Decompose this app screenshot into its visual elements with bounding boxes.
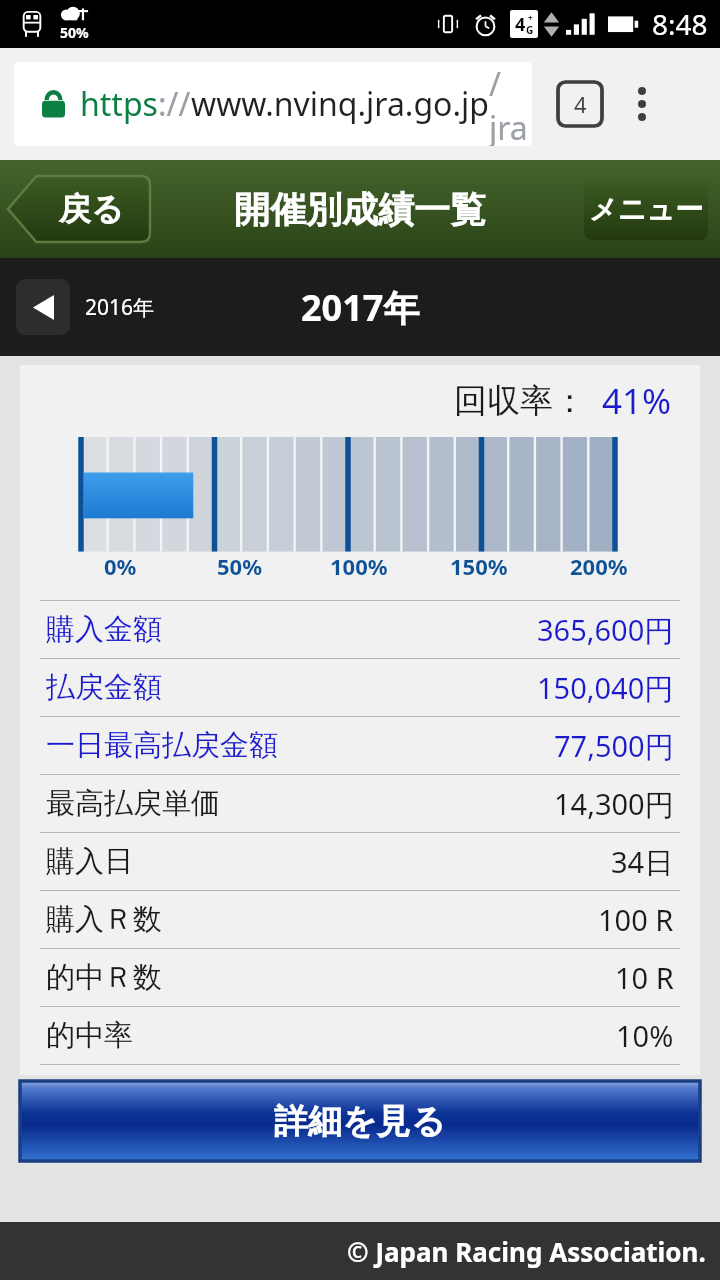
staticText: 150,040円 <box>537 668 674 708</box>
button[interactable]: Tabs <box>558 82 602 126</box>
staticText: メニュー <box>589 192 703 227</box>
button[interactable]: More options <box>622 79 662 129</box>
button[interactable]: 戻る <box>8 176 150 242</box>
staticText: :// <box>158 82 191 126</box>
staticText: 開催別成績一覧 <box>234 187 486 232</box>
button[interactable]: 購入日 <box>20 833 700 890</box>
button[interactable]: 的中Ｒ数 <box>20 949 700 1006</box>
staticText: 2017年 <box>301 283 420 332</box>
staticText: 購入Ｒ数 <box>46 901 162 938</box>
staticText: 8:48 <box>652 5 708 43</box>
staticText: 詳細を見る <box>274 1100 446 1143</box>
button[interactable]: メニュー <box>584 178 708 240</box>
staticText: 50% <box>217 551 263 581</box>
staticText: © Japan Racing Association. <box>347 1234 706 1269</box>
staticText: https <box>80 82 158 126</box>
staticText: 購入日 <box>46 843 133 880</box>
staticText: 10 R <box>615 958 674 997</box>
button[interactable]: 購入Ｒ数 <box>20 891 700 948</box>
staticText: 一日最高払戻金額 <box>46 727 278 764</box>
staticText: 4 <box>574 89 587 119</box>
staticText: 50% <box>60 23 89 42</box>
staticText: 戻る <box>59 189 124 229</box>
staticText: 10% <box>616 1016 674 1055</box>
staticText: 365,600円 <box>537 610 674 650</box>
staticText: 払戻金額 <box>46 669 162 706</box>
staticText: 4 <box>515 12 526 37</box>
staticText: 0% <box>104 551 137 581</box>
button[interactable]: 一日最高払戻金額 <box>20 717 700 774</box>
staticText: www.nvinq.jra.go.jp <box>191 82 489 126</box>
staticText: + <box>528 12 533 23</box>
button[interactable]: 購入金額 <box>20 601 700 658</box>
staticText: 的中率 <box>46 1017 133 1054</box>
staticText: 回収率： <box>454 380 586 422</box>
button[interactable]: 的中率 <box>20 1007 700 1064</box>
staticText: /jra <box>489 62 532 146</box>
staticText: 200% <box>570 551 628 581</box>
staticText: 41% <box>602 377 672 425</box>
staticText: 的中Ｒ数 <box>46 959 162 996</box>
staticText: 77,500円 <box>554 726 674 766</box>
staticText: 34日 <box>611 842 674 882</box>
button[interactable]: 最高払戻単価 <box>20 775 700 832</box>
staticText: 100% <box>330 551 388 581</box>
staticText: 購入金額 <box>46 611 162 648</box>
button[interactable]: 詳細を見る <box>20 1081 700 1161</box>
button[interactable]: https <box>14 62 532 146</box>
button[interactable]: 2016年 <box>16 279 155 335</box>
staticText: 150% <box>450 551 508 581</box>
button[interactable]: 払戻金額 <box>20 659 700 716</box>
staticText: G <box>526 23 534 37</box>
staticText: 2016年 <box>85 293 155 322</box>
staticText: 最高払戻単価 <box>46 785 220 822</box>
staticText: 14,300円 <box>554 784 674 824</box>
staticText: 100 R <box>598 900 674 939</box>
